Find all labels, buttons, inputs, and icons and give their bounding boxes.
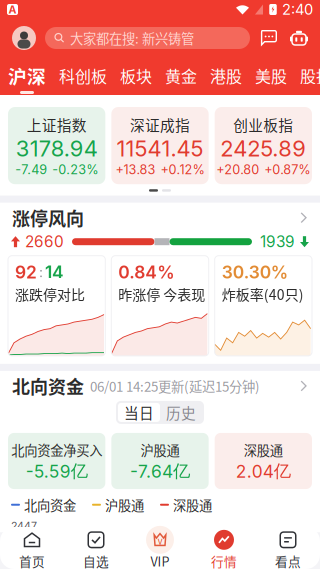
staticText: 沪股通: [105, 495, 144, 514]
button[interactable]: 美股: [255, 60, 287, 92]
staticText: 深证成指: [130, 114, 190, 135]
button[interactable]: Messages: [260, 30, 278, 46]
button[interactable]: 港股: [210, 60, 242, 92]
button[interactable]: 92: [8, 256, 105, 356]
button[interactable]: Profile: [12, 26, 36, 50]
staticText: 自选: [83, 552, 109, 569]
staticText: 11541.45: [116, 135, 203, 162]
button[interactable]: 大家都在搜: 新兴铸管: [45, 27, 250, 49]
staticText: 板块: [120, 64, 152, 87]
staticText: 北向资金净买入: [11, 440, 102, 459]
button[interactable]: 看点: [256, 526, 320, 569]
staticText: 股指: [300, 64, 320, 87]
staticText: +20.80: [216, 162, 259, 177]
staticText: 92: [15, 262, 37, 283]
staticText: 港股: [210, 64, 242, 87]
staticText: 2660: [25, 232, 64, 251]
staticText: 沪深: [8, 62, 46, 89]
staticText: 首页: [19, 552, 45, 569]
staticText: 0.84%: [118, 262, 174, 283]
staticText: -7.64亿: [130, 460, 190, 482]
staticText: 1939: [260, 232, 295, 251]
staticText: 黄金: [165, 64, 197, 87]
staticText: 上证指数: [27, 114, 87, 135]
button[interactable]: 北向资金净买入: [8, 433, 105, 489]
button[interactable]: 北向资金: [0, 371, 320, 401]
staticText: 06/01 14:25更新(延迟15分钟): [90, 376, 260, 396]
staticText: v: [157, 536, 162, 547]
staticText: +0.87%: [264, 162, 310, 177]
staticText: -5.59亿: [26, 460, 88, 482]
button[interactable]: 0.84%: [111, 256, 209, 356]
button[interactable]: 创业板指: [215, 107, 312, 184]
button[interactable]: 深股通: [215, 433, 312, 489]
button[interactable]: 涨停风向: [0, 203, 320, 233]
staticText: 炸板率(40只): [222, 284, 304, 304]
button[interactable]: 30.30%: [215, 256, 312, 356]
staticText: -7.49: [15, 162, 47, 177]
staticText: 涨跌停对比: [15, 284, 85, 304]
staticText: 行情: [211, 552, 237, 569]
staticText: 2447: [11, 519, 37, 532]
button[interactable]: 深证成指: [111, 107, 209, 184]
staticText: 涨停风向: [12, 205, 84, 231]
staticText: 创业板指: [233, 114, 293, 135]
button[interactable]: 首页: [0, 526, 64, 569]
button[interactable]: v: [128, 526, 192, 569]
button[interactable]: 行情: [192, 526, 256, 569]
staticText: 深股通: [173, 495, 212, 514]
staticText: A: [8, 3, 16, 16]
staticText: 北向资金: [12, 373, 84, 399]
staticText: 沪股通: [140, 440, 179, 459]
staticText: VIP: [150, 552, 169, 569]
staticText: :: [39, 264, 43, 281]
staticText: 3178.94: [16, 135, 98, 162]
button[interactable]: 黄金: [165, 60, 197, 92]
staticText: 历史: [166, 402, 196, 423]
staticText: -0.23%: [52, 162, 98, 177]
staticText: +0.12%: [160, 162, 204, 177]
button[interactable]: 当日: [118, 403, 160, 422]
staticText: 科创板: [59, 64, 107, 87]
staticText: 14: [45, 262, 64, 283]
staticText: 2425.89: [220, 135, 306, 162]
button[interactable]: 自选: [64, 526, 128, 569]
button[interactable]: 股指: [300, 60, 320, 92]
staticText: 大家都在搜: 新兴铸管: [70, 28, 194, 48]
staticText: +13.83: [115, 162, 155, 177]
staticText: 美股: [255, 64, 287, 87]
button[interactable]: 沪深: [8, 58, 46, 94]
button[interactable]: Assistant: [290, 30, 308, 46]
button[interactable]: 板块: [120, 60, 152, 92]
staticText: 30.30%: [222, 262, 288, 283]
staticText: 2.04亿: [236, 460, 291, 482]
button[interactable]: 沪股通: [111, 433, 209, 489]
staticText: 昨涨停 今表现: [118, 284, 205, 304]
staticText: 看点: [275, 552, 301, 569]
staticText: 2:40: [282, 1, 313, 18]
button[interactable]: 科创板: [59, 60, 107, 92]
button[interactable]: 历史: [160, 403, 202, 422]
staticText: 北向资金: [24, 495, 76, 514]
staticText: 深股通: [244, 440, 283, 459]
staticText: 当日: [124, 402, 154, 423]
button[interactable]: 上证指数: [8, 107, 105, 184]
